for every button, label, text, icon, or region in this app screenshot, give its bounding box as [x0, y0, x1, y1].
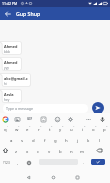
button[interactable]: Shift [0, 145, 11, 156]
staticText: z [15, 148, 18, 154]
button[interactable]: x [22, 145, 33, 156]
staticText: f [44, 137, 46, 143]
staticText: e [26, 126, 29, 132]
staticText: k [87, 137, 90, 143]
button[interactable]: Ahmed [1, 42, 21, 54]
button[interactable]: c [33, 145, 44, 156]
staticText: h [65, 137, 68, 143]
staticText: 5 [51, 125, 53, 128]
staticText: Arsla [4, 92, 14, 97]
button[interactable]: 2 [11, 123, 22, 134]
staticText: 1 [7, 125, 9, 128]
button[interactable]: Arsla [1, 90, 21, 102]
button[interactable]: 3 [22, 123, 33, 134]
button[interactable]: b [55, 145, 66, 156]
button[interactable]: ?123 [0, 157, 13, 168]
button[interactable]: Settings [65, 114, 75, 124]
staticText: Gup Shup [16, 10, 41, 17]
button[interactable]: Emoji [52, 114, 62, 124]
staticText: x [26, 148, 29, 154]
staticText: m [80, 148, 85, 154]
button[interactable]: Voice input [97, 114, 107, 124]
button[interactable]: Emoji keyboard [23, 157, 34, 168]
button[interactable]: v [44, 145, 55, 156]
button[interactable]: 9 [88, 123, 99, 134]
button[interactable]: f [39, 134, 50, 145]
button[interactable]: abc@gmail.com [1, 74, 30, 86]
staticText: a [10, 137, 13, 143]
button[interactable]: n [66, 145, 77, 156]
staticText: ?123 [3, 161, 10, 165]
staticText: r [38, 126, 40, 132]
staticText: 6 [62, 125, 64, 128]
staticText: hi [4, 82, 7, 86]
staticText: o [92, 126, 95, 132]
staticText: u [70, 126, 73, 132]
staticText: p [103, 126, 106, 132]
staticText: g [54, 137, 57, 143]
button[interactable]: h [61, 134, 72, 145]
staticText: b [59, 148, 62, 154]
button[interactable]: Stickers [38, 114, 48, 124]
staticText: Type a message [6, 106, 33, 111]
button[interactable]: Google [0, 114, 10, 124]
button[interactable]: Images [12, 114, 22, 124]
button[interactable]: k [83, 134, 94, 145]
staticText: 11:42 PM [2, 1, 18, 6]
staticText: d [32, 137, 35, 143]
staticText: . [83, 160, 85, 166]
staticText: i [82, 126, 84, 132]
staticText: 8 [84, 125, 86, 128]
button[interactable]: More options [83, 114, 93, 124]
button[interactable]: l [94, 134, 105, 145]
staticText: hey [4, 98, 10, 102]
button[interactable]: Home [48, 172, 59, 183]
staticText: yyy [4, 66, 9, 70]
staticText: q [4, 126, 7, 132]
button[interactable]: j [72, 134, 83, 145]
staticText: 4 [40, 125, 42, 128]
button[interactable]: Recent apps [72, 172, 83, 183]
button[interactable]: a [6, 134, 17, 145]
staticText: , [17, 160, 19, 166]
staticText: Ahmed [4, 44, 18, 49]
button[interactable]: Type a message [3, 104, 88, 113]
button[interactable]: GIF [25, 114, 35, 124]
staticText: j [77, 137, 79, 143]
button[interactable]: g [50, 134, 61, 145]
staticText: bbb [4, 50, 10, 54]
staticText: GIF [27, 117, 33, 121]
staticText: Ahmed [4, 60, 18, 65]
button[interactable]: Ahmed [1, 58, 21, 70]
button[interactable]: Send [92, 102, 104, 114]
button[interactable]: 1 [0, 123, 11, 134]
staticText: 7 [73, 125, 75, 128]
staticText: 2 [18, 125, 20, 128]
button[interactable]: 5 [44, 123, 55, 134]
button[interactable]: Back [23, 172, 34, 183]
button[interactable]: Backspace [94, 145, 105, 156]
button[interactable]: , [12, 157, 23, 168]
button[interactable]: 6 [55, 123, 66, 134]
button[interactable]: m [77, 145, 88, 156]
button[interactable]: 4 [33, 123, 44, 134]
staticText: 3 [29, 125, 31, 128]
staticText: v [48, 148, 51, 154]
staticText: 9 [95, 125, 97, 128]
staticText: s [21, 137, 24, 143]
staticText: y [59, 126, 62, 132]
staticText: c [37, 148, 40, 154]
button[interactable]: 7 [66, 123, 77, 134]
button[interactable]: d [28, 134, 39, 145]
staticText: 0 [106, 125, 108, 128]
button[interactable]: 0 [99, 123, 110, 134]
button[interactable]: Enter [91, 159, 105, 165]
button[interactable]: s [17, 134, 28, 145]
button[interactable]: 8 [77, 123, 88, 134]
button[interactable]: z [11, 145, 22, 156]
button[interactable]: Back [2, 8, 13, 19]
button[interactable]: Gup Shup [16, 7, 41, 20]
staticText: l [99, 137, 101, 143]
